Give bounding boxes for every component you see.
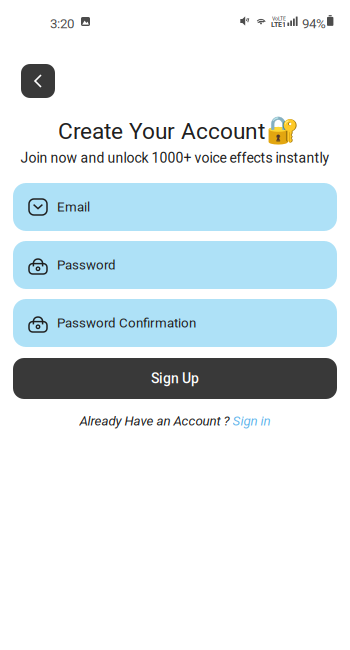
staticText: Sign Up bbox=[151, 370, 199, 387]
staticText: 94% bbox=[302, 16, 326, 32]
staticText: VoLTE bbox=[272, 15, 286, 22]
button[interactable]: Sign Up bbox=[13, 358, 337, 399]
staticText: Create Your Account bbox=[58, 118, 265, 145]
button[interactable]: Password Confirmation bbox=[13, 299, 337, 347]
staticText: Password Confirmation bbox=[57, 315, 196, 331]
staticText: 🔐 bbox=[266, 114, 299, 145]
staticText: Already Have an Account ? bbox=[79, 413, 229, 429]
staticText: LTE1 bbox=[271, 20, 286, 29]
staticText: Password bbox=[57, 257, 116, 273]
staticText: 3:20 bbox=[50, 16, 74, 32]
staticText: Sign in bbox=[232, 413, 270, 429]
staticText: Join now and unlock 1000+ voice effects … bbox=[20, 150, 329, 166]
staticText: Email bbox=[57, 199, 90, 215]
button[interactable]: Email bbox=[13, 183, 337, 231]
button[interactable]: Password bbox=[13, 241, 337, 289]
button[interactable]: Sign in bbox=[232, 413, 270, 429]
button[interactable]: Back bbox=[21, 64, 55, 98]
